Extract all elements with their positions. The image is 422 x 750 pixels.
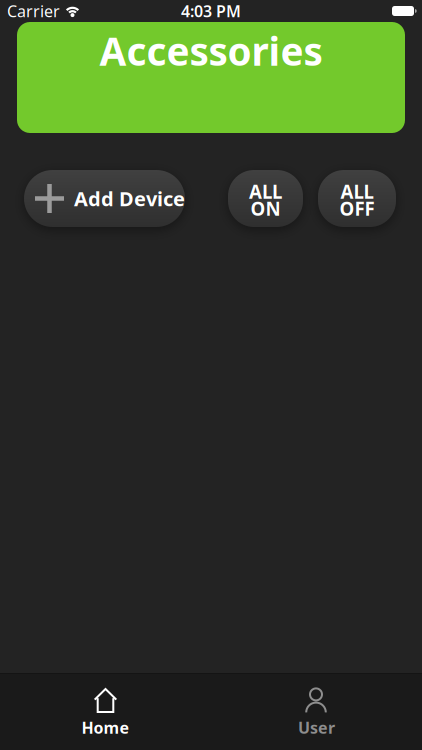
button[interactable]: Add Device <box>24 170 185 227</box>
button[interactable]: ALL <box>228 170 303 227</box>
staticText: Home <box>81 717 129 738</box>
staticText: Carrier <box>7 0 60 22</box>
staticText: Accessories <box>99 25 322 76</box>
button[interactable]: ALL <box>318 170 396 227</box>
staticText: OFF <box>339 196 374 221</box>
staticText: ALL <box>340 179 373 204</box>
staticText: 4:03 PM <box>181 0 241 22</box>
staticText: ALL <box>249 179 282 204</box>
button[interactable]: User <box>211 674 422 738</box>
staticText: ON <box>250 196 280 221</box>
staticText: Add Device <box>74 185 185 212</box>
staticText: User <box>298 717 335 738</box>
button[interactable]: Home <box>0 674 211 738</box>
